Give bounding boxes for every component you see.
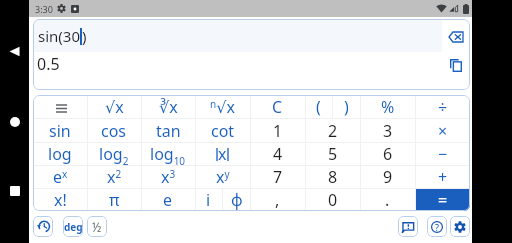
button[interactable]: Help xyxy=(427,216,447,237)
staticText: ) xyxy=(82,26,87,46)
button[interactable]: π xyxy=(87,189,141,211)
staticText: x xyxy=(218,143,227,165)
button[interactable]: Backspace xyxy=(442,19,470,52)
staticText: 4 xyxy=(273,143,283,165)
button[interactable]: . xyxy=(360,189,415,211)
staticText: × xyxy=(438,120,448,142)
button[interactable]: ( xyxy=(305,95,332,118)
button[interactable]: 5 xyxy=(305,143,360,165)
button[interactable]: √x xyxy=(87,95,141,118)
staticText: ( xyxy=(316,96,321,118)
button[interactable]: x3 xyxy=(141,166,195,188)
staticText: i xyxy=(206,189,211,211)
staticText: √x xyxy=(105,96,124,118)
staticText: xy xyxy=(216,166,230,188)
button[interactable]: deg xyxy=(63,216,83,237)
staticText: log xyxy=(48,143,72,165)
staticText: e xyxy=(163,189,173,211)
staticText: tan xyxy=(156,120,181,142)
button[interactable]: + xyxy=(415,166,470,188)
staticText: ∛x xyxy=(159,96,178,118)
button[interactable]: n√x xyxy=(195,95,250,118)
button[interactable]: , xyxy=(250,189,305,211)
staticText: cos xyxy=(101,120,127,142)
staticText: φ xyxy=(231,189,243,211)
staticText: deg xyxy=(64,220,83,234)
button[interactable]: × xyxy=(415,119,470,142)
staticText: 3:30 xyxy=(35,3,53,15)
button[interactable]: Copy xyxy=(442,52,470,90)
button[interactable]: xy xyxy=(195,166,250,188)
button[interactable]: 9 xyxy=(360,166,415,188)
button[interactable]: = xyxy=(415,189,470,211)
button[interactable]: Settings xyxy=(450,216,470,237)
staticText: ex xyxy=(53,166,68,188)
staticText: 9 xyxy=(383,166,393,188)
button[interactable]: 1 xyxy=(250,119,305,142)
button[interactable]: cot xyxy=(195,119,250,142)
button[interactable]: Feedback xyxy=(398,216,418,237)
staticText: cot xyxy=(211,120,235,142)
button[interactable]: 0 xyxy=(305,189,360,211)
button[interactable]: ex xyxy=(33,166,87,188)
button[interactable]: 8 xyxy=(305,166,360,188)
button[interactable]: e xyxy=(141,189,195,211)
staticText: ? xyxy=(435,221,440,233)
staticText: 0 xyxy=(328,189,338,211)
staticText: 7 xyxy=(273,166,283,188)
button[interactable]: cos xyxy=(87,119,141,142)
staticText: − xyxy=(438,143,448,165)
button[interactable]: Recents xyxy=(10,186,20,196)
button[interactable]: log10 xyxy=(141,143,195,165)
staticText: n√x xyxy=(210,96,235,118)
button[interactable]: x xyxy=(195,143,250,165)
button[interactable]: ) xyxy=(333,95,360,118)
staticText: log2 xyxy=(99,143,129,165)
staticText: sin(30 xyxy=(38,26,80,46)
button[interactable]: % xyxy=(360,95,415,118)
staticText: + xyxy=(438,166,448,188)
button[interactable]: ½ xyxy=(87,216,107,237)
staticText: π xyxy=(109,189,120,211)
button[interactable]: 6 xyxy=(360,143,415,165)
button[interactable]: i xyxy=(195,189,222,211)
staticText: 0.5 xyxy=(37,53,60,75)
staticText: % xyxy=(381,96,395,118)
staticText: ) xyxy=(344,96,349,118)
staticText: C xyxy=(272,96,283,118)
button[interactable]: Home xyxy=(10,117,20,127)
button[interactable]: Menu xyxy=(33,95,87,118)
button[interactable]: 3 xyxy=(360,119,415,142)
button[interactable]: 7 xyxy=(250,166,305,188)
button[interactable]: ÷ xyxy=(415,95,470,118)
staticText: sin xyxy=(49,120,71,142)
staticText: 3 xyxy=(383,120,393,142)
staticText: x2 xyxy=(107,166,122,188)
button[interactable]: Back xyxy=(9,46,20,57)
staticText: = xyxy=(438,189,448,211)
staticText: ÷ xyxy=(438,96,448,118)
button[interactable]: log2 xyxy=(87,143,141,165)
staticText: 2 xyxy=(328,120,338,142)
button[interactable]: φ xyxy=(223,189,250,211)
button[interactable]: x! xyxy=(33,189,87,211)
button[interactable]: C xyxy=(250,95,305,118)
button[interactable]: ∛x xyxy=(141,95,195,118)
button[interactable]: History xyxy=(33,216,53,237)
button[interactable]: − xyxy=(415,143,470,165)
staticText: x! xyxy=(54,189,67,211)
staticText: 6 xyxy=(383,143,393,165)
staticText: , xyxy=(275,189,280,211)
button[interactable]: 4 xyxy=(250,143,305,165)
button[interactable]: x2 xyxy=(87,166,141,188)
staticText: log10 xyxy=(150,143,186,165)
staticText: x3 xyxy=(161,166,176,188)
button[interactable]: 2 xyxy=(305,119,360,142)
staticText: ½ xyxy=(92,219,102,235)
button[interactable]: tan xyxy=(141,119,195,142)
staticText: 5 xyxy=(328,143,338,165)
button[interactable]: sin xyxy=(33,119,87,142)
staticText: 8 xyxy=(328,166,338,188)
staticText: 1 xyxy=(273,120,283,142)
button[interactable]: log xyxy=(33,143,87,165)
